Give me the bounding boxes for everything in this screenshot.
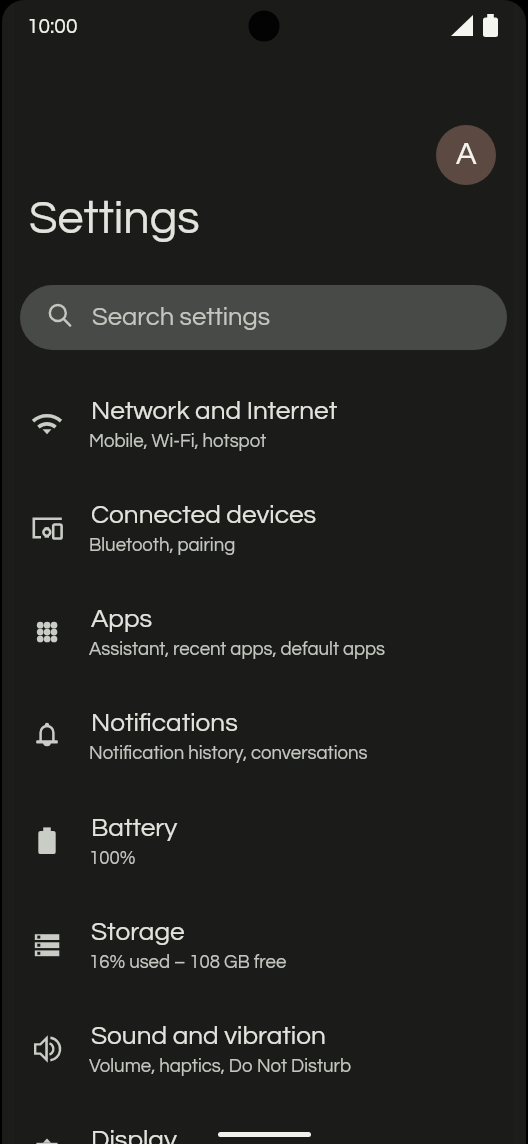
staticText: Display <box>91 1127 177 1144</box>
staticText: Notification history, conversations <box>89 744 368 763</box>
staticText: Sound and vibration <box>91 1023 326 1050</box>
staticText: Mobile, Wi-Fi, hotspot <box>89 432 267 451</box>
staticText: 16% used – 108 GB free <box>89 953 287 972</box>
staticText: 100% <box>89 849 136 868</box>
button[interactable]: Notifications <box>0 705 528 809</box>
button[interactable]: Account <box>436 125 496 185</box>
button[interactable]: Battery <box>0 810 528 914</box>
staticText: Network and Internet <box>91 398 338 425</box>
staticText: Settings <box>29 195 200 243</box>
button[interactable]: Apps <box>0 601 528 705</box>
button[interactable]: Display <box>0 1122 528 1144</box>
staticText: Notifications <box>91 710 238 737</box>
staticText: 10:00 <box>27 16 78 38</box>
staticText: Search settings <box>92 304 271 330</box>
staticText: Storage <box>91 919 185 946</box>
staticText: Battery <box>91 815 178 842</box>
staticText: Volume, haptics, Do Not Disturb <box>89 1057 351 1076</box>
staticText: Assistant, recent apps, default apps <box>89 640 386 659</box>
staticText: Bluetooth, pairing <box>89 536 236 555</box>
button[interactable]: Network and Internet <box>0 393 528 497</box>
staticText: A <box>456 139 477 171</box>
button[interactable]: Storage <box>0 914 528 1018</box>
button[interactable]: Connected devices <box>0 497 528 601</box>
staticText: Apps <box>91 606 153 633</box>
button[interactable]: Sound and vibration <box>0 1018 528 1122</box>
staticText: Connected devices <box>91 502 317 529</box>
button[interactable]: Search settings <box>20 285 507 350</box>
